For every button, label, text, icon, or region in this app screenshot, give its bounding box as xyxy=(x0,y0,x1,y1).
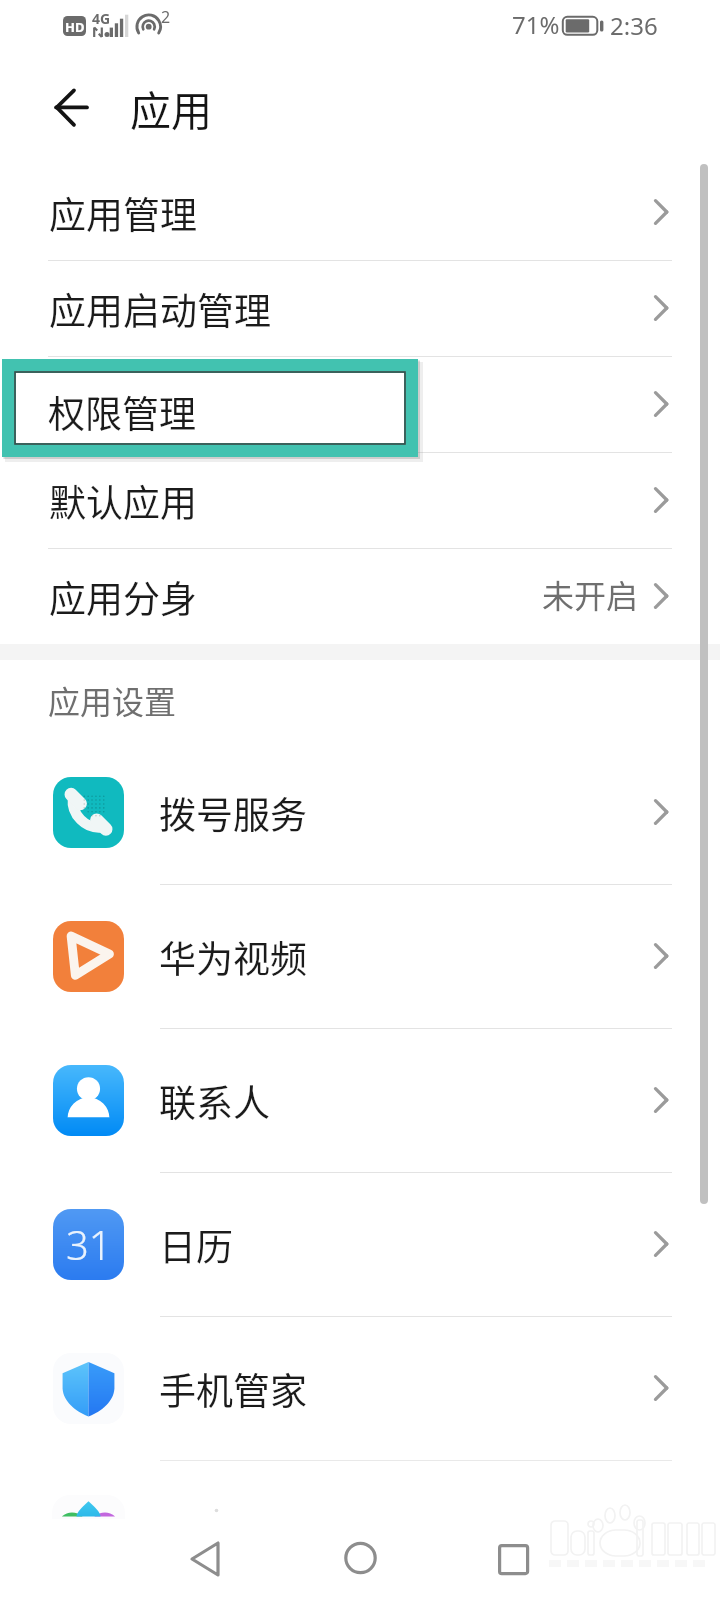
staticText: 应用设置 xyxy=(48,677,177,723)
button[interactable]: Recent apps xyxy=(483,1528,543,1588)
staticText: 71% xyxy=(512,8,560,41)
button[interactable]: Back xyxy=(38,78,110,138)
staticText: 2 xyxy=(161,6,171,28)
button[interactable]: 应用管理 xyxy=(0,164,720,260)
button[interactable]: Home xyxy=(330,1528,390,1588)
staticText: 应用 xyxy=(130,78,212,137)
staticText: HD xyxy=(65,18,85,36)
staticText: 默认应用 xyxy=(49,474,197,528)
staticText: 拨号服务 xyxy=(159,786,307,840)
staticText: 应用管理 xyxy=(49,186,197,240)
button[interactable]: 应用启动管理 xyxy=(0,260,720,356)
button[interactable]: 手机管家 xyxy=(0,1316,720,1460)
button[interactable]: Back xyxy=(182,1528,242,1588)
staticText: 权限管理 xyxy=(49,378,197,432)
staticText: 手机管家 xyxy=(159,1362,307,1416)
staticText: 31 xyxy=(66,1217,112,1271)
staticText: 日历 xyxy=(159,1218,233,1272)
staticText: 华为视频 xyxy=(159,930,307,984)
button[interactable]: 应用分身 xyxy=(0,548,720,644)
button[interactable]: 拨号服务 xyxy=(0,740,720,884)
staticText: 未开启 xyxy=(542,571,639,617)
staticText: 4G xyxy=(92,9,111,28)
staticText: 应用分身 xyxy=(49,570,197,624)
button[interactable]: 权限管理 xyxy=(2,359,423,462)
button[interactable]: 华为视频 xyxy=(0,884,720,1028)
staticText: 联系人 xyxy=(159,1074,270,1128)
button[interactable]: 权限管理 xyxy=(0,356,720,452)
staticText: 应用启动管理 xyxy=(49,282,271,336)
staticText: 2:36 xyxy=(610,9,658,42)
button[interactable]: 31 xyxy=(0,1172,720,1316)
button[interactable]: 联系人 xyxy=(0,1028,720,1172)
button[interactable]: 默认应用 xyxy=(0,452,720,548)
staticText: 权限管理 xyxy=(48,385,196,439)
